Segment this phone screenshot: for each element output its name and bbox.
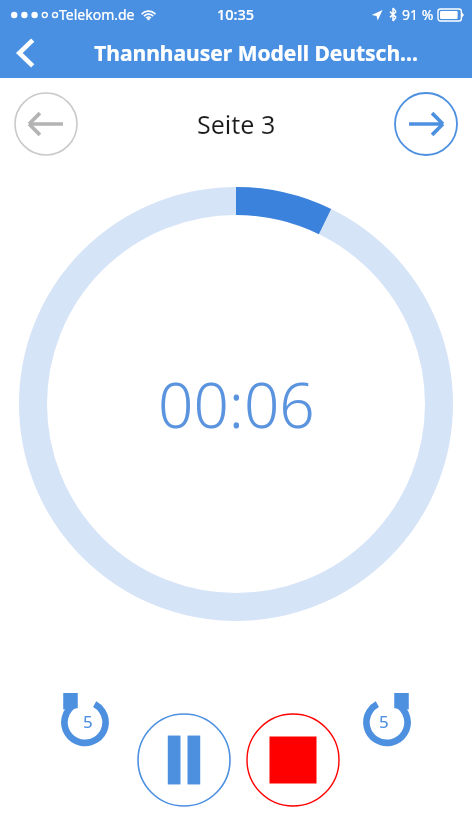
staticText: 00:06 bbox=[158, 362, 315, 446]
staticText: 5 bbox=[379, 710, 389, 733]
button[interactable]: Stop bbox=[246, 713, 340, 807]
staticText: Telekom.de bbox=[59, 5, 135, 24]
button[interactable]: Pause bbox=[137, 713, 231, 807]
staticText: 5 bbox=[83, 710, 93, 733]
button[interactable]: Next page bbox=[394, 92, 458, 156]
staticText: Seite 3 bbox=[197, 107, 276, 141]
button[interactable]: Back bbox=[0, 28, 52, 78]
staticText: 91 % bbox=[402, 5, 434, 24]
staticText: Thannhauser Modell Deutsch... bbox=[94, 39, 418, 68]
button[interactable]: Forward 5 seconds bbox=[348, 681, 426, 759]
button[interactable]: Replay 5 seconds bbox=[46, 681, 124, 759]
staticText: 10:35 bbox=[217, 4, 255, 24]
button[interactable]: Previous page bbox=[14, 92, 78, 156]
